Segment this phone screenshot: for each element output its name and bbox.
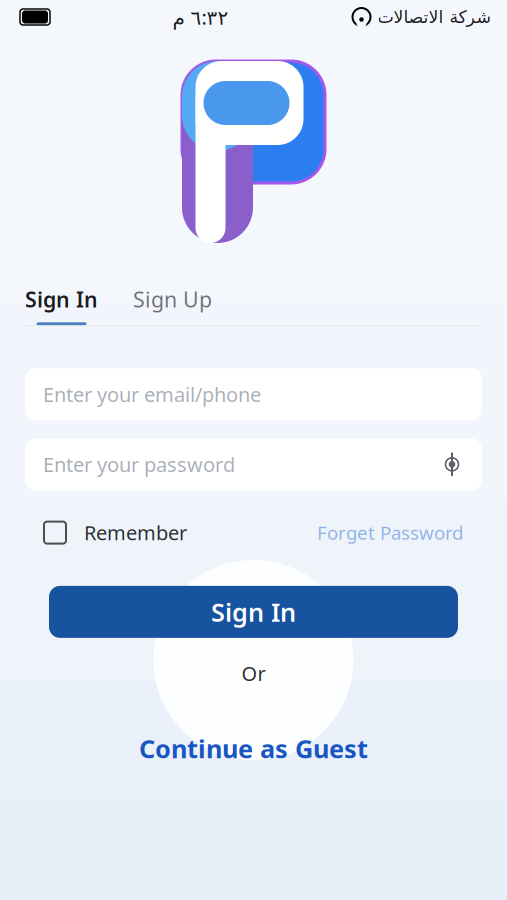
button[interactable]: Remember xyxy=(44,519,187,546)
button[interactable]: Forget Password xyxy=(317,520,463,545)
staticText: Enter your password xyxy=(43,451,235,478)
button[interactable]: Continue as Guest xyxy=(60,734,447,762)
staticText: Continue as Guest xyxy=(139,732,368,765)
staticText: Sign Up xyxy=(133,285,212,313)
button[interactable]: Show password xyxy=(440,453,464,475)
staticText: Enter your email/phone xyxy=(43,381,261,408)
button[interactable]: Sign In xyxy=(49,586,458,638)
button[interactable]: Sign Up xyxy=(133,285,212,325)
staticText: Sign In xyxy=(25,285,98,313)
staticText: Remember xyxy=(84,519,187,546)
staticText: Or xyxy=(241,660,265,686)
staticText: Forget Password xyxy=(317,520,463,545)
staticText: شركة الاتصالات xyxy=(377,7,491,27)
staticText: ٦:٣٢ م xyxy=(172,4,228,30)
button[interactable]: Sign In xyxy=(25,285,98,325)
staticText: Sign In xyxy=(211,595,296,629)
